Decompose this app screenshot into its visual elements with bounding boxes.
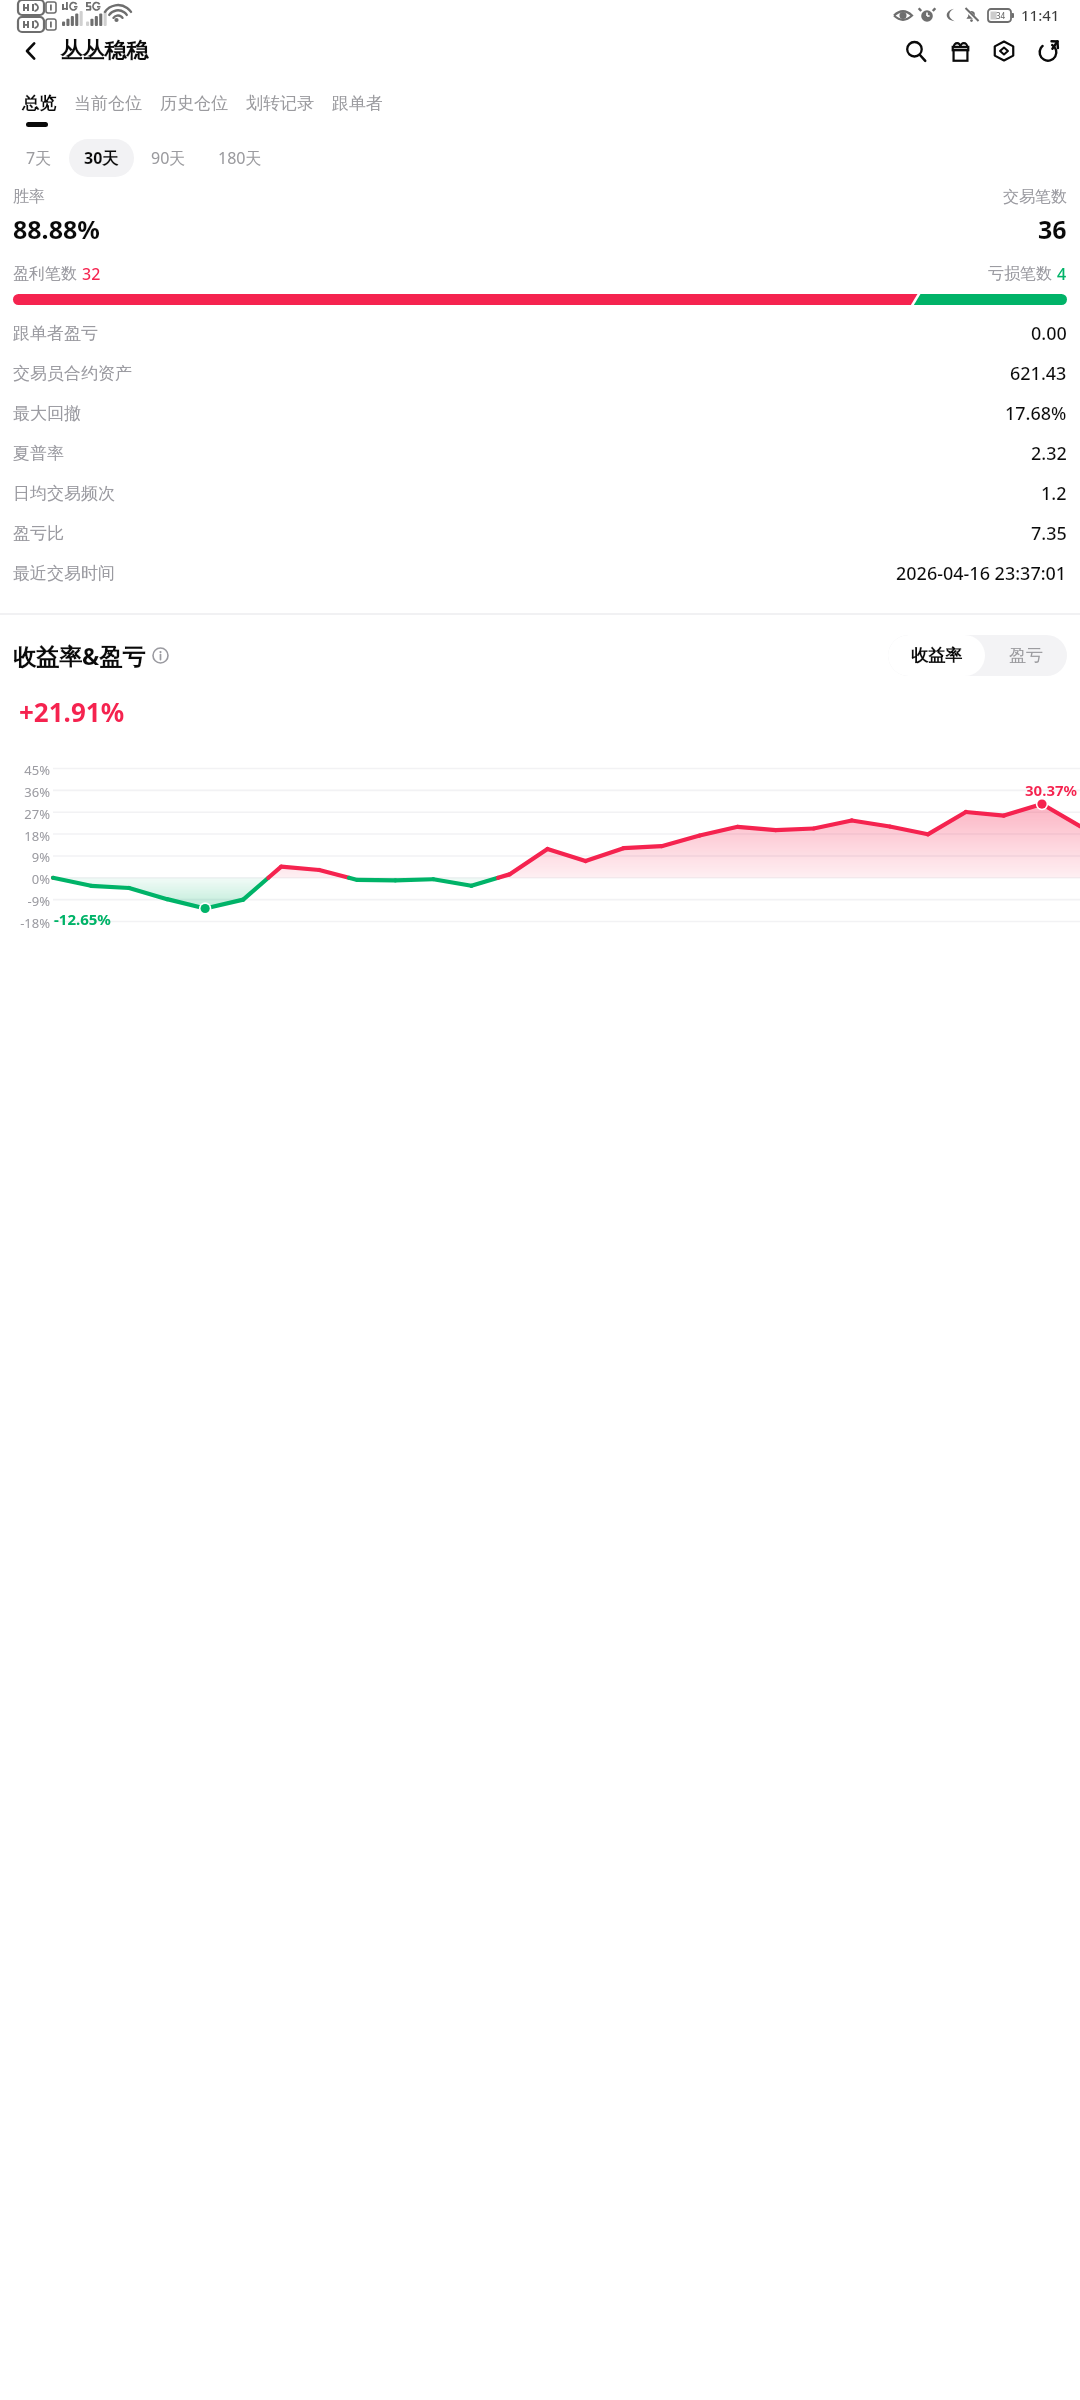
staticText: 最大回撤	[13, 403, 81, 424]
button[interactable]: 交易员合约资产	[13, 353, 1067, 393]
button[interactable]: 最大回撤	[13, 393, 1067, 433]
button[interactable]: 30天	[69, 139, 134, 177]
staticText: 34	[996, 10, 1006, 21]
staticText: -18%	[20, 914, 50, 929]
staticText: 7.35	[1031, 521, 1067, 546]
staticText: 32	[82, 263, 101, 285]
staticText: 交易笔数	[1003, 187, 1067, 207]
button[interactable]: 跟单者	[332, 93, 383, 114]
staticText: 30.37%	[1025, 780, 1078, 800]
staticText: 88.88%	[13, 212, 100, 246]
staticText: 45%	[24, 761, 50, 776]
button[interactable]: Back	[10, 30, 52, 72]
staticText: 27%	[24, 805, 50, 820]
button[interactable]: 划转记录	[246, 93, 314, 114]
staticText: 9%	[31, 848, 50, 863]
button[interactable]: 当前仓位	[74, 93, 142, 114]
staticText: 夏普率	[13, 443, 64, 464]
staticText: 0.00	[1031, 321, 1067, 346]
staticText: 30天	[84, 147, 119, 169]
button[interactable]: Search	[894, 29, 938, 73]
staticText: -12.65%	[54, 909, 111, 929]
staticText: 盈亏	[1009, 645, 1043, 666]
staticText: 收益率	[911, 645, 962, 666]
staticText: 36%	[24, 783, 50, 798]
staticText: 胜率	[13, 187, 45, 207]
staticText: 1.2	[1041, 481, 1067, 506]
button[interactable]: 收益率	[888, 635, 985, 676]
button[interactable]: 日均交易频次	[13, 473, 1067, 513]
staticText: 亏损笔数	[988, 264, 1052, 284]
button[interactable]: 7天	[11, 139, 67, 177]
staticText: 盈利笔数	[13, 264, 77, 284]
staticText: +21.91%	[19, 694, 125, 729]
staticText: 交易员合约资产	[13, 363, 132, 384]
button[interactable]: 180天	[203, 139, 277, 177]
staticText: 36	[1038, 212, 1067, 246]
staticText: -9%	[27, 892, 50, 907]
button[interactable]: 历史仓位	[160, 93, 228, 114]
staticText: 90天	[151, 147, 186, 169]
button[interactable]: 总览	[22, 93, 56, 114]
staticText: 最近交易时间	[13, 563, 115, 584]
button[interactable]: 盈亏	[985, 635, 1067, 676]
staticText: 621.43	[1010, 361, 1067, 386]
staticText: 2.32	[1031, 441, 1067, 466]
staticText: 划转记录	[246, 93, 314, 114]
staticText: 180天	[218, 147, 262, 169]
button[interactable]: 盈亏比	[13, 513, 1067, 553]
staticText: 历史仓位	[160, 93, 228, 114]
staticText: 收益率&盈亏	[13, 640, 146, 671]
staticText: 4	[1057, 263, 1067, 285]
button[interactable]: 最近交易时间	[13, 553, 1067, 593]
staticText: 2026-04-16 23:37:01	[896, 561, 1067, 586]
button[interactable]: Settings	[982, 29, 1026, 73]
button[interactable]: Share	[1026, 29, 1070, 73]
button[interactable]: 90天	[136, 139, 201, 177]
staticText: 当前仓位	[74, 93, 142, 114]
staticText: 18%	[24, 827, 50, 842]
staticText: 跟单者	[332, 93, 383, 114]
button[interactable]: Rewards	[938, 29, 982, 73]
staticText: 总览	[22, 93, 56, 114]
staticText: 11:41	[1021, 5, 1060, 25]
button[interactable]: Info	[152, 647, 169, 664]
staticText: 17.68%	[1005, 401, 1067, 426]
staticText: 0%	[31, 870, 50, 885]
staticText: 日均交易频次	[13, 483, 115, 504]
button[interactable]: 跟单者盈亏	[13, 313, 1067, 353]
staticText: 跟单者盈亏	[13, 323, 98, 344]
staticText: 盈亏比	[13, 523, 64, 544]
button[interactable]: 夏普率	[13, 433, 1067, 473]
staticText: 7天	[26, 147, 52, 169]
staticText: 丛丛稳稳	[60, 37, 148, 65]
